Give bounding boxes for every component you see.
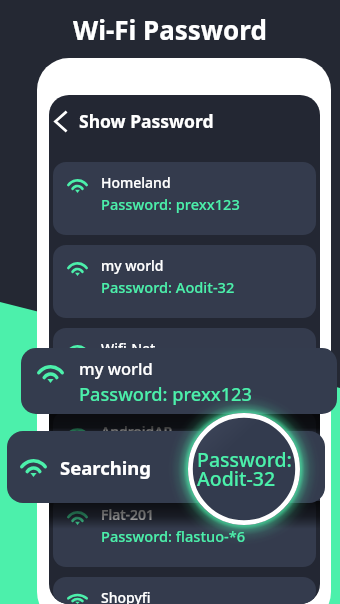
staticText: Password: prexx123 (79, 382, 252, 407)
staticText: Searching (60, 455, 152, 480)
button[interactable]: AndroidAP (53, 411, 316, 484)
staticText: Show Password (79, 109, 214, 133)
button[interactable]: Shopyfi (53, 577, 316, 604)
staticText: Flat-201 (101, 505, 155, 524)
staticText: Password: Aodit-32 (197, 446, 292, 492)
button[interactable]: Homeland (53, 162, 316, 235)
staticText: Password: prexx123 (101, 194, 240, 214)
staticText: AndroidAP (101, 422, 172, 441)
staticText: Wi-Fi Password (73, 12, 267, 47)
staticText: my world (101, 256, 164, 275)
staticText: my world (79, 357, 153, 379)
staticText: Shopyfi (101, 588, 151, 604)
staticText: Homeland (101, 173, 171, 192)
staticText: Wifi-Net (101, 339, 156, 358)
staticText: Password: abcd1234 (101, 443, 243, 463)
button[interactable]: Back (49, 95, 71, 147)
button[interactable]: my world (53, 245, 316, 318)
staticText: Password: Aodit-32 (101, 277, 235, 297)
button[interactable]: Flat-201 (53, 494, 316, 567)
button[interactable]: my world (21, 348, 337, 414)
button[interactable]: Password: Aodit-32 (188, 413, 300, 525)
staticText: Password: flastuo-*6 (101, 526, 246, 546)
button[interactable]: Wifi-Net (53, 328, 316, 401)
button[interactable]: Back (49, 95, 320, 147)
staticText: Password: pass-9981 (101, 360, 246, 380)
button[interactable]: Searching (7, 431, 325, 503)
